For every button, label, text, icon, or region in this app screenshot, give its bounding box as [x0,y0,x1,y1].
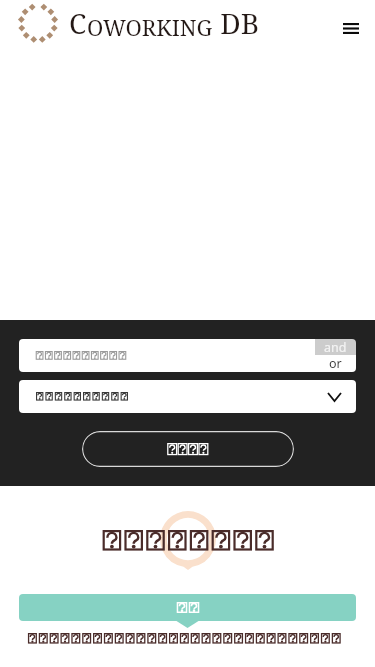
button[interactable]: or [315,355,356,372]
staticText: C [69,4,87,42]
button[interactable] [82,431,294,467]
staticText: OWORKING [87,12,213,42]
staticText: or [329,355,342,372]
button[interactable] [19,594,356,621]
button[interactable]: Menu [327,4,375,52]
button[interactable] [19,339,315,372]
button[interactable]: and [315,339,356,355]
staticText: and [324,339,347,355]
staticText: DB [213,4,259,42]
button[interactable] [19,380,356,413]
